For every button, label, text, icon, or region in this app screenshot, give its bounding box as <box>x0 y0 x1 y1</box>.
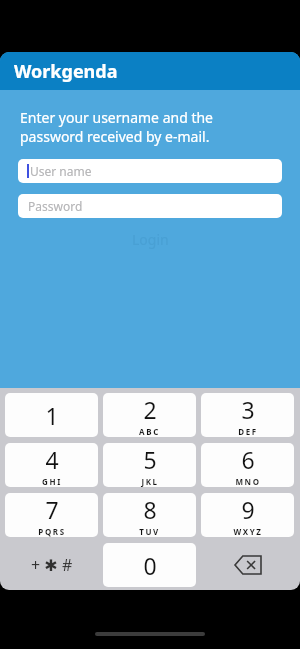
staticText: 2 <box>143 394 157 425</box>
button[interactable]: 9 <box>201 493 294 537</box>
staticText: JKL <box>141 476 159 487</box>
button[interactable]: 8 <box>103 493 196 537</box>
button[interactable]: Backspace <box>201 543 294 587</box>
staticText: Password <box>28 198 83 214</box>
button[interactable]: 2 <box>103 393 196 437</box>
button[interactable]: 0 <box>103 543 196 587</box>
staticText: PQRS <box>38 526 66 537</box>
button[interactable]: 4 <box>5 443 98 487</box>
staticText: 5 <box>143 444 157 475</box>
staticText: Enter your username and the password rec… <box>20 108 214 146</box>
button[interactable]: Password <box>18 194 282 218</box>
button[interactable]: 5 <box>103 443 196 487</box>
staticText: 1 <box>45 400 59 431</box>
staticText: GHI <box>42 476 62 487</box>
staticText: 3 <box>241 394 255 425</box>
staticText: TUV <box>139 526 160 537</box>
button[interactable]: 7 <box>5 493 98 537</box>
staticText: 8 <box>143 494 157 525</box>
staticText: 6 <box>241 444 255 475</box>
staticText: Workgenda <box>14 59 118 84</box>
staticText: 9 <box>241 494 255 525</box>
staticText: 0 <box>143 550 157 581</box>
button[interactable]: 3 <box>201 393 294 437</box>
button[interactable]: + ✱ # <box>5 543 98 587</box>
button[interactable]: 6 <box>201 443 294 487</box>
staticText: Login <box>132 230 169 249</box>
staticText: User name <box>30 163 92 179</box>
staticText: + ✱ # <box>31 554 73 576</box>
staticText: DEF <box>238 426 258 437</box>
staticText: WXYZ <box>233 526 263 537</box>
staticText: 7 <box>45 494 59 525</box>
staticText: MNO <box>235 476 261 487</box>
staticText: ABC <box>139 426 160 437</box>
button[interactable]: 1 <box>5 393 98 437</box>
staticText: 4 <box>45 444 59 475</box>
button[interactable]: User name <box>18 159 282 183</box>
